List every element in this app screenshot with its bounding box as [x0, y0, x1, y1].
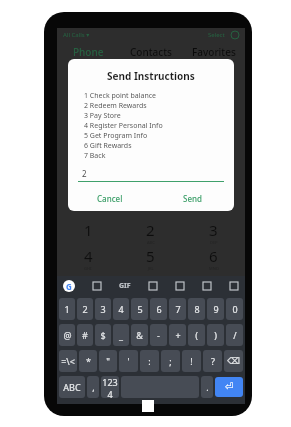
button[interactable]: _ — [113, 324, 129, 346]
button[interactable]: Cancel — [68, 185, 151, 211]
button[interactable]: * — [79, 350, 97, 372]
button[interactable]: =\< — [59, 350, 77, 372]
button[interactable]: ' — [119, 350, 138, 372]
staticText: ' — [127, 355, 130, 367]
button[interactable]: 2 — [119, 220, 182, 246]
button[interactable]: Favorites — [182, 42, 245, 62]
button[interactable]: ; — [161, 350, 180, 372]
staticText: 2 — [82, 303, 88, 315]
staticText: @ — [63, 329, 72, 341]
button[interactable]: 2 — [77, 298, 93, 320]
staticText: * — [86, 355, 91, 367]
button[interactable]: ? — [203, 350, 222, 372]
staticText: + — [175, 329, 181, 341]
button[interactable]: ) — [207, 324, 224, 346]
staticText: 6 — [209, 246, 218, 266]
button[interactable]: " — [99, 350, 117, 372]
staticText: _ — [119, 329, 123, 341]
staticText: 3 — [100, 303, 106, 315]
button[interactable]: : — [140, 350, 159, 372]
button[interactable]: @ — [59, 324, 75, 346]
staticText: 4 Register Personal Info — [84, 121, 163, 131]
staticText: 1 Check point balance — [84, 91, 157, 101]
button[interactable]: + — [169, 324, 186, 346]
staticText: ) — [214, 329, 217, 341]
staticText: - — [157, 329, 160, 341]
staticText: . — [206, 381, 209, 393]
button[interactable]: & — [131, 324, 148, 346]
staticText: GIF — [119, 281, 131, 291]
button[interactable]: 7 — [169, 298, 186, 320]
button[interactable]: Send — [151, 185, 234, 211]
button[interactable]: # — [77, 324, 93, 346]
button[interactable]: ⌫ — [224, 350, 243, 372]
staticText: Phone — [73, 45, 104, 59]
button[interactable]: Contacts — [119, 42, 182, 62]
button[interactable]: 4 — [57, 246, 119, 272]
button[interactable]: 8 — [188, 298, 205, 320]
button[interactable]: More — [202, 281, 212, 291]
button[interactable]: 0 — [226, 298, 243, 320]
button[interactable]: 6 — [182, 246, 245, 272]
staticText: Cancel — [97, 193, 123, 204]
button[interactable]: Clipboard — [148, 281, 158, 291]
button[interactable]: 5 — [119, 246, 182, 272]
staticText: Favorites — [192, 45, 236, 59]
staticText: 0 — [232, 303, 238, 315]
button[interactable]: Settings — [175, 281, 185, 291]
button[interactable]: Enter — [215, 377, 243, 397]
button[interactable]: Voice input — [229, 281, 239, 291]
button[interactable]: ( — [188, 324, 205, 346]
staticText: G — [66, 281, 72, 292]
button[interactable]: Google — [63, 280, 75, 292]
staticText: ⌫ — [227, 356, 240, 366]
staticText: 4 — [84, 246, 93, 266]
staticText: 9 — [213, 303, 219, 315]
staticText: / — [233, 329, 237, 341]
staticText: : — [148, 355, 151, 367]
staticText: 6 Gift Rewards — [84, 141, 132, 151]
button[interactable]: ABC — [59, 376, 85, 398]
staticText: 1 — [84, 220, 93, 240]
button[interactable]: . — [201, 376, 213, 398]
button[interactable]: Stickers — [92, 281, 102, 291]
button[interactable]: 3 — [182, 220, 245, 246]
button[interactable]: , — [87, 376, 99, 398]
staticText: =\< — [61, 355, 75, 367]
button[interactable]: Phone — [57, 42, 119, 62]
staticText: & — [136, 329, 143, 341]
staticText: ; — [169, 355, 172, 367]
button[interactable]: 3 — [95, 298, 111, 320]
staticText: ⏎ — [225, 381, 234, 393]
button[interactable]: 6 — [150, 298, 167, 320]
button[interactable]: GIF — [119, 281, 131, 291]
button[interactable]: 5 — [131, 298, 148, 320]
staticText: 7 Back — [84, 151, 106, 161]
button[interactable]: 4 — [113, 298, 129, 320]
staticText: 3 — [209, 220, 218, 240]
staticText: ( — [195, 329, 198, 341]
staticText: 2 Redeem Rewards — [84, 101, 147, 111]
staticText: 6 — [156, 303, 162, 315]
staticText: 1234 — [101, 376, 119, 398]
staticText: 5 — [146, 246, 155, 266]
staticText: ? — [211, 355, 215, 367]
button[interactable]: 1234 — [101, 376, 119, 398]
button[interactable]: $ — [95, 324, 111, 346]
button[interactable]: 9 — [207, 298, 224, 320]
staticText: 3 Pay Store — [84, 111, 121, 121]
button[interactable]: ! — [182, 350, 201, 372]
staticText: 4 — [118, 303, 124, 315]
staticText: 1 — [64, 303, 70, 315]
staticText: Contacts — [130, 45, 172, 59]
button[interactable]: 1 — [59, 298, 75, 320]
button[interactable]: - — [150, 324, 167, 346]
button[interactable]: / — [226, 324, 243, 346]
staticText: 2 — [82, 168, 87, 179]
